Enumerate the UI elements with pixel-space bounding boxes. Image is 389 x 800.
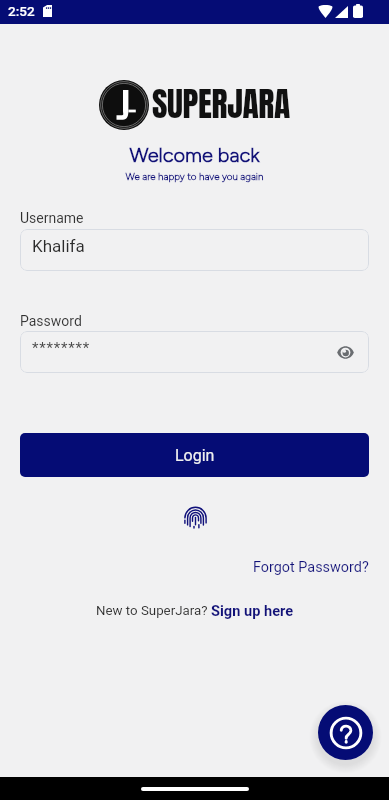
button[interactable]: Sign up here <box>211 602 294 619</box>
button[interactable]: Fingerprint login <box>180 503 210 533</box>
staticText: Login <box>175 446 215 465</box>
staticText: SUPERJARA <box>152 79 290 129</box>
button[interactable]: Help <box>318 705 373 760</box>
staticText: Welcome back <box>0 143 389 167</box>
button[interactable]: Forgot Password? <box>253 559 389 576</box>
staticText: We are happy to have you again <box>0 171 389 183</box>
button[interactable]: Show password <box>334 341 356 363</box>
staticText: ******** <box>32 339 90 357</box>
button[interactable]: Login <box>20 433 369 477</box>
button[interactable]: Khalifa <box>20 229 369 271</box>
button[interactable]: ******** <box>20 331 369 373</box>
staticText: Khalifa <box>32 236 85 256</box>
staticText: Password <box>20 313 82 329</box>
staticText: New to SuperJara? <box>96 603 211 619</box>
staticText: Username <box>20 210 84 226</box>
staticText: 2:52 <box>8 3 35 19</box>
